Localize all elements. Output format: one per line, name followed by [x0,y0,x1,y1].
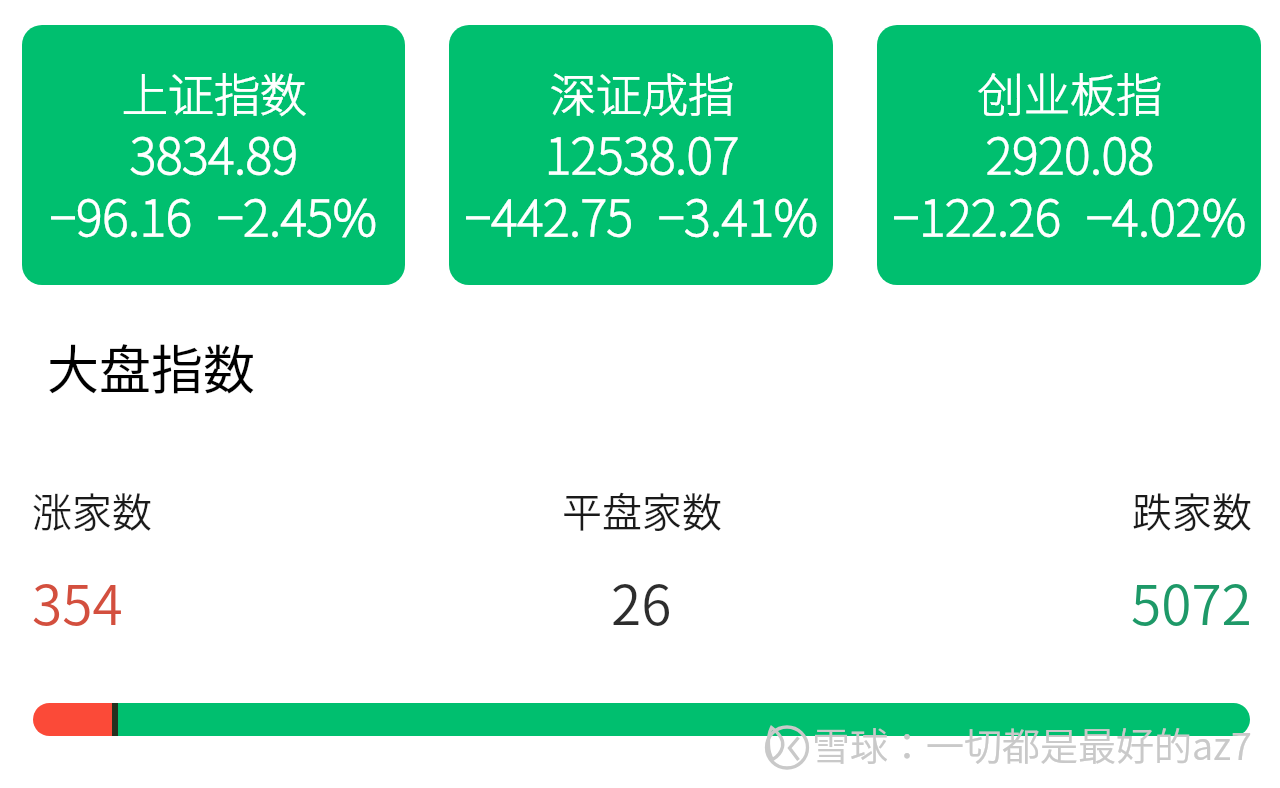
button[interactable]: 上证指数 [22,25,405,285]
staticText: 5072 [1131,577,1252,637]
button[interactable]: 深证成指 [449,25,833,285]
staticText: 26 [611,577,672,637]
staticText: −96.16 [50,186,192,248]
button[interactable]: 平盘家数 [438,487,845,637]
button[interactable]: 涨家数 [32,487,438,637]
staticText: 354 [32,577,123,637]
staticText: 平盘家数 [562,487,722,537]
button[interactable]: 跌家数 [845,487,1252,637]
staticText: 雪球：一切都是最好的az7 [812,723,1252,769]
staticText: −3.41% [658,186,818,248]
staticText: 12538.07 [545,124,739,186]
staticText: −442.75 [465,186,633,248]
staticText: −4.02% [1086,186,1246,248]
staticText: 大盘指数 [47,339,256,401]
staticText: 3834.89 [130,124,298,186]
other: 雪球 [762,724,812,774]
staticText: 创业板指 [978,62,1162,124]
staticText: −122.26 [893,186,1061,248]
staticText: −2.45% [217,186,377,248]
staticText: 深证成指 [550,62,734,124]
staticText: 跌家数 [1132,487,1252,537]
button[interactable]: 涨跌家数比例 [33,703,1250,736]
staticText: 2920.08 [986,124,1154,186]
button[interactable]: 创业板指 [877,25,1261,285]
staticText: 涨家数 [32,487,152,537]
staticText: 上证指数 [122,62,306,124]
